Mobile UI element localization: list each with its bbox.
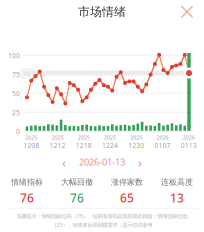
staticText: 涨停家数 — [111, 177, 143, 187]
button[interactable]: 涨停家数 — [102, 175, 152, 208]
staticText: 2025 — [104, 134, 116, 141]
staticText: 情绪指标 — [11, 177, 43, 187]
staticText: 2025 — [51, 134, 63, 141]
staticText: 1208 — [23, 141, 39, 150]
staticText: （25），短线有反弹回暖需求；提示仅供参考 — [51, 221, 152, 228]
button[interactable]: 上一日 — [58, 156, 70, 168]
staticText: 大幅回撤 — [61, 177, 93, 187]
staticText: 50 — [12, 89, 20, 98]
staticText: 2025 — [130, 134, 142, 141]
staticText: 2025 — [78, 134, 90, 141]
staticText: 1218 — [76, 141, 92, 150]
staticText: 市场情绪 — [78, 4, 126, 19]
staticText: 2026 — [183, 134, 195, 141]
button[interactable]: 下一日 — [134, 156, 146, 168]
staticText: 2025 — [25, 134, 37, 141]
button[interactable]: 连板高度 — [152, 175, 202, 208]
staticText: 2026-01-13 — [79, 156, 125, 168]
staticText: 0113 — [181, 141, 197, 150]
staticText: 65 — [120, 190, 134, 206]
staticText: 75 — [12, 70, 20, 79]
button[interactable]: 大幅回撤 — [52, 175, 102, 208]
staticText: 76 — [23, 69, 31, 78]
staticText: 25 — [12, 108, 20, 117]
button[interactable]: 关闭 — [178, 3, 196, 21]
button[interactable]: 情绪指标 — [2, 175, 52, 208]
staticText: ‹ — [62, 153, 66, 171]
staticText: 100 — [8, 51, 20, 60]
staticText: 76 — [20, 190, 34, 206]
staticText: 1224 — [102, 141, 118, 150]
staticText: 连板高度 — [161, 177, 193, 187]
staticText: 0 — [16, 127, 20, 136]
staticText: 13 — [170, 190, 184, 206]
staticText: 0107 — [155, 141, 171, 150]
staticText: 1212 — [49, 141, 65, 150]
staticText: › — [138, 153, 142, 171]
staticText: 1230 — [128, 141, 144, 150]
staticText: 76 — [70, 190, 84, 206]
staticText: 2026 — [157, 134, 169, 141]
staticText: 温馨提示：情绪指标过高（75），短期有筹码兑现回落的风险；情绪指标过低 — [16, 212, 187, 220]
